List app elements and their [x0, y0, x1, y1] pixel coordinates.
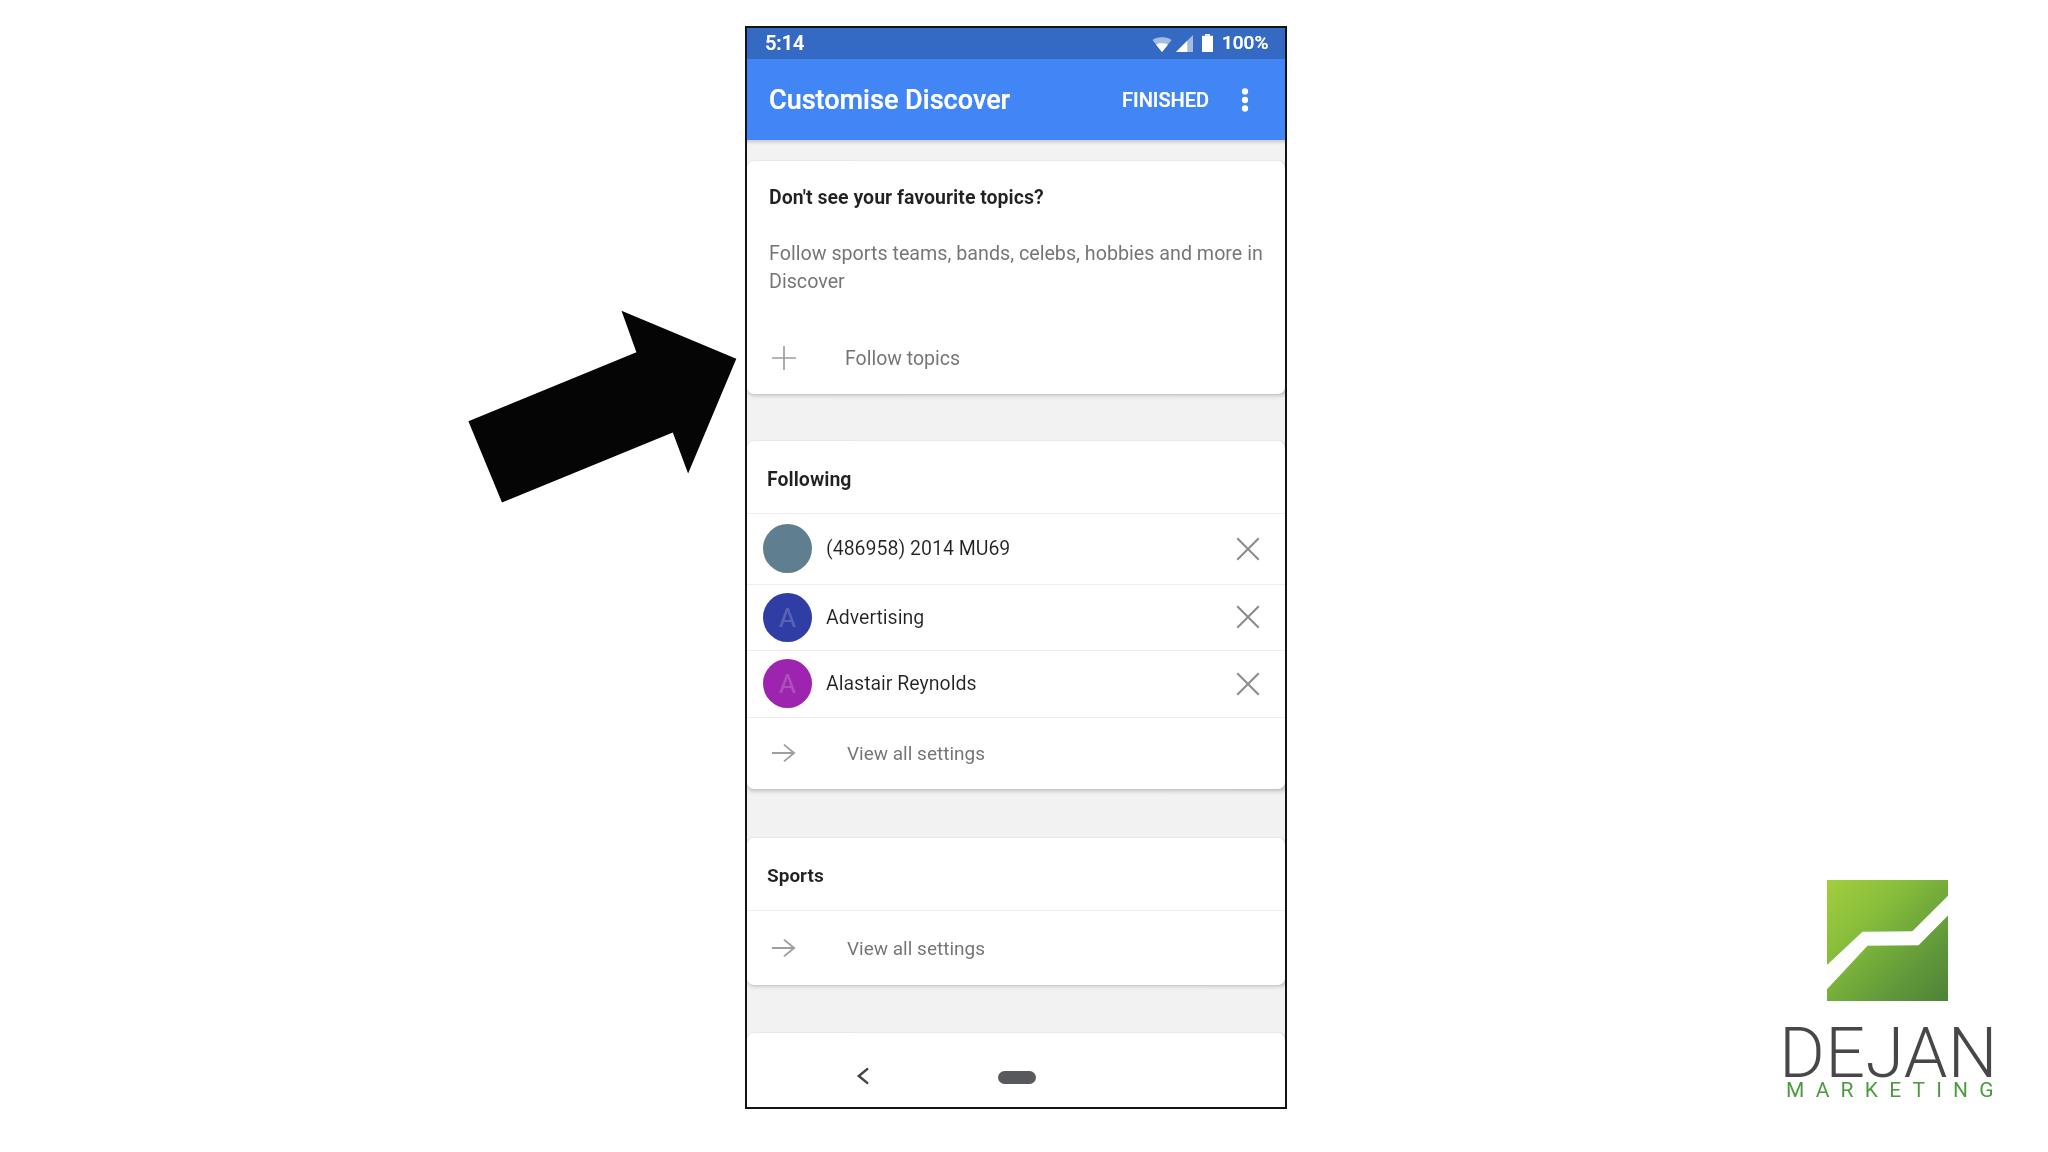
staticText: Following	[767, 468, 852, 491]
staticText: 5:14	[765, 31, 805, 54]
staticText: 100%	[1222, 31, 1269, 53]
button[interactable]: A	[747, 584, 1285, 650]
staticText: View all settings	[847, 937, 985, 959]
staticText: FINISHED	[1122, 88, 1210, 111]
staticText: A	[779, 669, 796, 699]
staticText: View all settings	[847, 742, 985, 764]
staticText: Customise Discover	[769, 84, 1011, 116]
staticText: MARKETING	[1786, 1078, 2005, 1103]
staticText: Sports	[767, 864, 824, 886]
staticText: Follow topics	[845, 347, 961, 370]
staticText: (486958) 2014 MU69	[826, 537, 1011, 560]
staticText: Alastair Reynolds	[826, 672, 977, 695]
staticText: DEJAN	[1779, 1012, 1998, 1094]
button[interactable]: Remove Alastair Reynolds	[1224, 660, 1272, 708]
button[interactable]: A	[747, 650, 1285, 717]
button[interactable]: More options	[1221, 76, 1269, 124]
staticText: A	[779, 603, 796, 633]
button[interactable]: View all settings	[747, 717, 1285, 789]
button[interactable]: Follow topics	[747, 328, 1285, 388]
button[interactable]: Home	[998, 1071, 1036, 1084]
staticText: Advertising	[826, 606, 925, 629]
button[interactable]: Back	[839, 1053, 887, 1101]
button[interactable]: Remove Advertising	[1224, 593, 1272, 641]
button[interactable]: Remove (486958) 2014 MU69	[1224, 525, 1272, 573]
button[interactable]: (486958) 2014 MU69	[747, 513, 1285, 584]
button[interactable]: View all settings	[747, 910, 1285, 985]
staticText: Follow sports teams, bands, celebs, hobb…	[769, 242, 1269, 292]
button[interactable]: FINISHED	[1109, 72, 1222, 128]
staticText: Don't see your favourite topics?	[769, 186, 1044, 209]
